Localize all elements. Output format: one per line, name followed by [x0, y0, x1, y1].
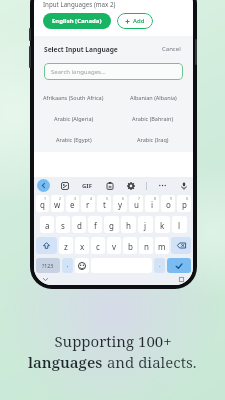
- staticText: Input Languages (max 2): [43, 0, 116, 8]
- staticText: y: [118, 199, 123, 210]
- button[interactable]: z: [59, 237, 73, 254]
- button[interactable]: c: [91, 237, 105, 254]
- button[interactable]: l: [172, 216, 187, 233]
- staticText: Arabic (Bahrain): [132, 115, 174, 122]
- staticText: v: [112, 241, 117, 252]
- staticText: Afrikaans (South Africa): [43, 94, 104, 101]
- button[interactable]: v: [107, 237, 121, 254]
- staticText: p: [182, 199, 187, 210]
- button[interactable]: ?123: [36, 258, 60, 273]
- staticText: i: [151, 199, 154, 210]
- staticText: 2: [59, 196, 62, 201]
- staticText: 5: [106, 196, 109, 201]
- staticText: English (Canada): [52, 17, 102, 25]
- button[interactable]: 6: [113, 195, 127, 212]
- button[interactable]: Cancel: [160, 43, 183, 55]
- button[interactable]: ,: [62, 258, 73, 273]
- staticText: Arabic (Iraq): [137, 136, 169, 143]
- button[interactable]: GIF: [80, 180, 94, 192]
- staticText: 6: [122, 196, 125, 201]
- staticText: Select Input Language: [44, 45, 118, 54]
- staticText: Search languages...: [51, 68, 106, 76]
- button[interactable]: Clipboard: [104, 180, 115, 191]
- button[interactable]: h: [121, 216, 136, 233]
- staticText: Add: [133, 17, 145, 25]
- button[interactable]: 5: [97, 195, 111, 212]
- button[interactable]: a: [40, 216, 54, 233]
- button[interactable]: s: [56, 216, 70, 233]
- staticText: 3: [74, 196, 77, 201]
- staticText: Albanian (Albania): [130, 94, 177, 101]
- staticText: h: [126, 220, 131, 231]
- staticText: a: [45, 220, 50, 231]
- button[interactable]: More: [157, 180, 168, 191]
- button[interactable]: .: [154, 258, 165, 273]
- button[interactable]: Search languages...: [44, 63, 183, 80]
- staticText: 9: [170, 196, 173, 201]
- button[interactable]: b: [123, 237, 137, 254]
- staticText: ,: [67, 261, 69, 269]
- button[interactable]: j: [138, 216, 153, 233]
- button[interactable]: English (Canada): [43, 13, 111, 29]
- staticText: 4: [90, 196, 93, 201]
- button[interactable]: Hide keyboard: [42, 276, 49, 283]
- staticText: GIF: [82, 182, 92, 190]
- button[interactable]: Afrikaans (South Africa): [34, 87, 113, 108]
- button[interactable]: Back: [37, 179, 50, 192]
- button[interactable]: f: [88, 216, 102, 233]
- button[interactable]: Backspace: [171, 237, 191, 254]
- button[interactable]: k: [155, 216, 170, 233]
- staticText: j: [144, 220, 147, 231]
- staticText: n: [144, 241, 149, 252]
- button[interactable]: 1: [36, 195, 49, 212]
- button[interactable]: Voice input: [178, 180, 189, 191]
- button[interactable]: Arabic (Bahrain): [113, 108, 193, 129]
- button[interactable]: Enter: [167, 258, 191, 273]
- staticText: 7: [138, 196, 141, 201]
- staticText: u: [134, 199, 139, 210]
- button[interactable]: 0: [177, 195, 191, 212]
- button[interactable]: Arabic (Iraq): [113, 129, 193, 150]
- button[interactable]: 8: [145, 195, 159, 212]
- button[interactable]: x: [75, 237, 89, 254]
- staticText: 8: [154, 196, 157, 201]
- staticText: g: [109, 220, 114, 231]
- staticText: s: [61, 220, 65, 231]
- staticText: w: [54, 199, 61, 210]
- button[interactable]: Shift: [36, 237, 57, 254]
- staticText: l: [178, 220, 181, 231]
- button[interactable]: Settings: [125, 180, 136, 191]
- button[interactable]: 7: [129, 195, 143, 212]
- staticText: languages: [28, 352, 103, 372]
- staticText: 0: [186, 196, 189, 201]
- staticText: b: [128, 241, 133, 252]
- button[interactable]: 4: [81, 195, 95, 212]
- button[interactable]: Stickers: [59, 180, 70, 191]
- staticText: 1: [44, 196, 47, 201]
- button[interactable]: Emoji: [75, 258, 89, 273]
- button[interactable]: Albanian (Albania): [113, 87, 193, 108]
- staticText: q: [40, 199, 45, 210]
- button[interactable]: d: [72, 216, 86, 233]
- button[interactable]: Add: [117, 13, 153, 29]
- button[interactable]: g: [104, 216, 119, 233]
- staticText: e: [70, 199, 75, 210]
- button[interactable]: n: [139, 237, 153, 254]
- staticText: f: [94, 220, 97, 231]
- button[interactable]: Arabic (Algeria): [34, 108, 113, 129]
- staticText: .: [159, 261, 161, 269]
- button[interactable]: Recents: [178, 276, 185, 283]
- staticText: Cancel: [162, 45, 181, 53]
- staticText: Arabic (Egypt): [56, 136, 92, 143]
- button[interactable]: Arabic (Egypt): [34, 129, 113, 150]
- staticText: k: [160, 220, 165, 231]
- staticText: Supporting 100+: [54, 331, 172, 351]
- button[interactable]: 2: [51, 195, 64, 212]
- button[interactable]: m: [155, 237, 169, 254]
- button[interactable]: 9: [161, 195, 175, 212]
- button[interactable]: 3: [66, 195, 79, 212]
- staticText: o: [166, 199, 171, 210]
- staticText: c: [96, 241, 100, 252]
- staticText: z: [64, 241, 68, 252]
